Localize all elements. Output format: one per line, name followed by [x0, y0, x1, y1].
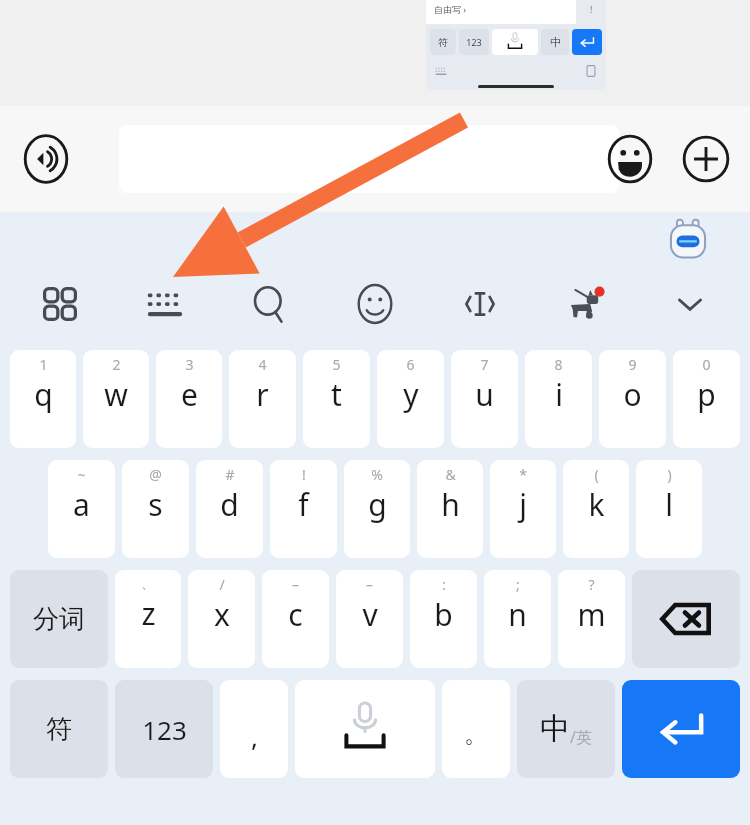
button[interactable]: – — [262, 570, 329, 668]
button[interactable]: 0 — [673, 350, 740, 448]
staticText: t — [331, 374, 342, 415]
staticText: 2 — [112, 355, 121, 374]
button[interactable]: 123 — [115, 680, 213, 778]
button[interactable]: ~ — [48, 460, 115, 558]
button[interactable]: 1 — [10, 350, 76, 448]
staticText: b — [434, 594, 453, 635]
staticText: d — [220, 484, 239, 525]
staticText: 中 — [540, 710, 570, 748]
staticText: 分词 — [33, 603, 85, 636]
button[interactable]: ! — [270, 460, 337, 558]
staticText: 123 — [142, 712, 187, 747]
button[interactable]: Assistant — [664, 216, 712, 264]
button[interactable]: Keyboard — [139, 278, 191, 330]
button[interactable]: 、 — [115, 570, 181, 668]
button[interactable]: @ — [122, 460, 189, 558]
staticText: p — [697, 374, 716, 415]
staticText: 中 — [550, 35, 561, 49]
button[interactable]: 符 — [430, 29, 456, 55]
button[interactable]: , — [220, 680, 288, 778]
staticText: c — [288, 594, 303, 635]
staticText: 9 — [628, 355, 637, 374]
button[interactable]: 8 — [525, 350, 592, 448]
button[interactable]: % — [344, 460, 410, 558]
button[interactable]: Edit cursor — [454, 278, 506, 330]
button[interactable]: 9 — [599, 350, 666, 448]
button[interactable]: Enter — [622, 680, 740, 778]
staticText: l — [665, 484, 673, 525]
button[interactable]: 7 — [451, 350, 518, 448]
button[interactable]: 3 — [156, 350, 222, 448]
button[interactable]: 2 — [83, 350, 149, 448]
staticText: ; — [516, 575, 520, 594]
button[interactable]: Apps — [34, 278, 86, 330]
staticText: ! — [302, 465, 306, 484]
button[interactable]: More — [678, 131, 734, 187]
staticText: a — [73, 484, 90, 525]
staticText: / — [219, 575, 225, 594]
staticText: w — [104, 374, 128, 415]
button[interactable]: Space — [295, 680, 435, 778]
button[interactable]: & — [417, 460, 483, 558]
button[interactable]: ) — [636, 460, 702, 558]
staticText: h — [441, 484, 460, 525]
staticText: 7 — [480, 355, 489, 374]
button[interactable]: Emoji — [602, 131, 658, 187]
button[interactable]: ; — [484, 570, 551, 668]
button[interactable]: 5 — [303, 350, 370, 448]
button[interactable]: ? — [558, 570, 625, 668]
button[interactable]: 6 — [377, 350, 444, 448]
staticText: o — [623, 374, 642, 415]
button[interactable]: – — [336, 570, 403, 668]
button[interactable]: Backspace — [632, 570, 740, 668]
staticText: 5 — [332, 355, 341, 374]
staticText: e — [181, 374, 198, 415]
staticText: r — [256, 374, 269, 415]
staticText: ( — [594, 465, 599, 484]
button[interactable] — [119, 125, 619, 193]
staticText: – — [366, 575, 373, 594]
staticText: x — [214, 594, 230, 635]
button[interactable]: # — [196, 460, 263, 558]
button[interactable]: 符 — [10, 680, 108, 778]
staticText: 1 — [39, 355, 48, 374]
button[interactable]: 分词 — [10, 570, 108, 668]
button[interactable]: Pet — [559, 278, 611, 330]
button[interactable]: Voice input — [18, 131, 74, 187]
button[interactable]: Emoji — [349, 278, 401, 330]
button[interactable]: : — [410, 570, 477, 668]
staticText: & — [445, 465, 456, 484]
staticText: j — [519, 484, 527, 525]
staticText: 6 — [406, 355, 415, 374]
button[interactable]: * — [490, 460, 556, 558]
staticText: 、 — [141, 575, 155, 593]
staticText: s — [148, 484, 163, 525]
staticText: ~ — [77, 465, 86, 484]
button[interactable]: Collapse — [664, 278, 716, 330]
button[interactable]: / — [188, 570, 255, 668]
staticText: f — [298, 484, 309, 525]
staticText: 。 — [464, 719, 488, 749]
button[interactable]: 4 — [229, 350, 296, 448]
staticText: k — [588, 484, 605, 525]
staticText: ? — [588, 575, 595, 594]
staticText: – — [292, 575, 299, 594]
button[interactable]: 123 — [459, 29, 489, 55]
staticText: ! — [590, 3, 593, 15]
staticText: z — [141, 593, 156, 634]
staticText: y — [403, 374, 419, 415]
button[interactable]: 。 — [442, 680, 510, 778]
staticText: 3 — [185, 355, 194, 374]
button[interactable] — [572, 29, 602, 55]
button[interactable]: 中 — [517, 680, 615, 778]
staticText: : — [442, 575, 446, 594]
staticText: g — [368, 484, 387, 525]
staticText: /英 — [570, 726, 592, 748]
staticText: * — [519, 465, 527, 484]
button[interactable]: 中 — [541, 29, 569, 55]
staticText: 符 — [438, 36, 448, 49]
button[interactable] — [492, 29, 538, 55]
staticText: % — [371, 465, 383, 484]
button[interactable]: Search — [244, 278, 296, 330]
button[interactable]: ( — [563, 460, 629, 558]
